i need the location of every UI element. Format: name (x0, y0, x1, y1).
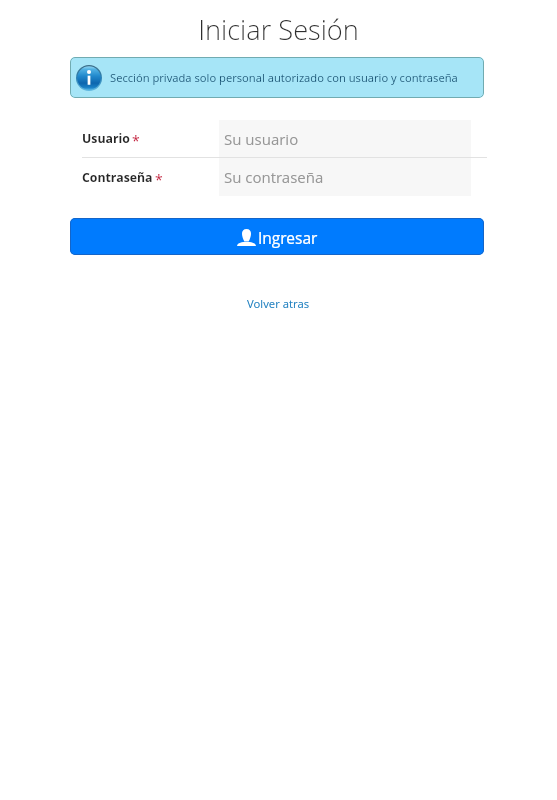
staticText: * (155, 170, 163, 189)
staticText: Ingresar (258, 227, 318, 248)
staticText: * (132, 131, 140, 150)
staticText: Usuario (82, 130, 130, 147)
button[interactable]: Su contraseña (219, 158, 471, 196)
staticText: Iniciar Sesión (0, 11, 557, 48)
button[interactable]: Su usuario (219, 120, 471, 157)
other: Información (76, 65, 102, 91)
button[interactable]: Volver atras (241, 292, 316, 315)
button[interactable]: Usuario (70, 218, 484, 255)
other: Usuario (237, 229, 256, 246)
staticText: Su usuario (224, 129, 299, 149)
staticText: Su contraseña (224, 167, 324, 187)
staticText: Contraseña (82, 169, 153, 186)
staticText: Sección privada solo personal autorizado… (110, 70, 458, 85)
